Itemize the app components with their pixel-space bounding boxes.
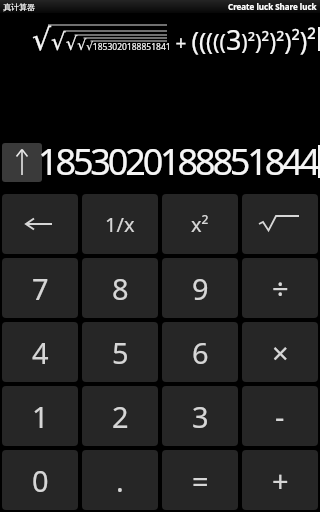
staticText: 2 [112,397,129,436]
staticText: + [272,461,289,500]
button[interactable]: × [242,322,318,382]
button[interactable]: . [82,450,158,510]
button[interactable]: 1/x [82,194,158,254]
staticText: 8 [112,269,129,308]
button[interactable]: + [242,450,318,510]
staticText: 5 [112,333,129,372]
button[interactable]: 3 [162,386,238,446]
staticText: √√√√√1853020188851841 + (((((3)²)²)²)²)² [32,21,317,58]
button[interactable]: 2 [82,386,158,446]
button[interactable]: x² [162,194,238,254]
staticText: 1853020188851844 [38,137,318,186]
staticText: 0 [32,461,49,500]
button[interactable]: Create luck Share luck [228,1,317,12]
staticText: 真计算器 [3,2,35,12]
button[interactable]: 4 [2,322,78,382]
button[interactable]: 9 [162,258,238,318]
button[interactable]: = [162,450,238,510]
staticText: 1 [32,397,49,436]
button[interactable]: 5 [82,322,158,382]
staticText: × [272,333,289,372]
staticText: x² [191,211,209,238]
button[interactable] [242,194,318,254]
staticText: 4 [32,333,49,372]
button[interactable]: 7 [2,258,78,318]
button[interactable] [2,194,78,254]
staticText: ÷ [272,269,289,308]
staticText: 3 [192,397,209,436]
staticText: 7 [32,269,49,308]
button[interactable]: ÷ [242,258,318,318]
button[interactable]: - [242,386,318,446]
button[interactable]: 1 [2,386,78,446]
staticText: = [192,461,209,500]
button[interactable]: 8 [82,258,158,318]
button[interactable]: 0 [2,450,78,510]
staticText: . [116,461,124,500]
staticText: 1/x [105,211,135,238]
staticText: 6 [192,333,209,372]
staticText: - [275,397,285,436]
button[interactable]: 6 [162,322,238,382]
staticText: 9 [192,269,209,308]
button[interactable] [2,143,42,182]
